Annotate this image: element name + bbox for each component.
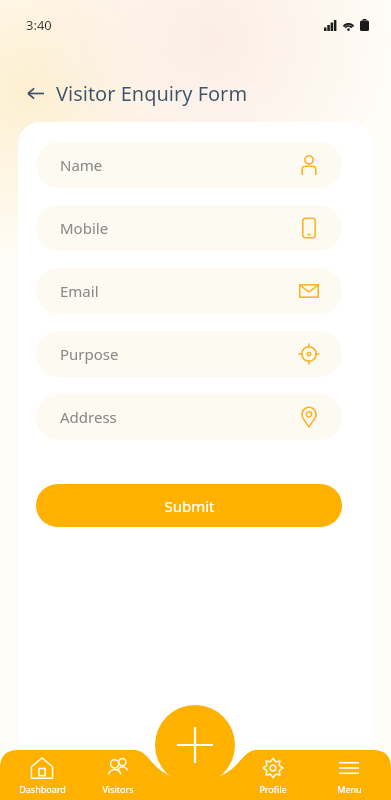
button[interactable]: Email [36, 268, 342, 314]
staticText: Visitor Enquiry Form [56, 80, 248, 107]
staticText: Menu [337, 783, 362, 795]
button[interactable]: Submit [36, 484, 342, 527]
staticText: Dashboard [19, 783, 66, 795]
button[interactable]: Back [20, 78, 50, 108]
button[interactable]: Profile [238, 750, 308, 800]
button[interactable]: Purpose [36, 331, 342, 377]
button[interactable]: Menu [314, 750, 384, 800]
staticText: Email [60, 281, 99, 301]
staticText: 3:40 [26, 16, 52, 34]
staticText: Submit [164, 496, 215, 516]
button[interactable]: Mobile [36, 205, 342, 251]
staticText: Name [60, 155, 103, 175]
staticText: Profile [259, 783, 287, 795]
staticText: Purpose [60, 344, 119, 364]
staticText: Visitors [102, 783, 134, 795]
button[interactable]: Visitors [83, 750, 153, 800]
button[interactable]: Name [36, 142, 342, 188]
button[interactable]: Dashboard [7, 750, 77, 800]
staticText: Mobile [60, 218, 109, 238]
button[interactable]: Address [36, 394, 342, 440]
button[interactable]: Add [155, 705, 235, 785]
staticText: Address [60, 407, 117, 427]
